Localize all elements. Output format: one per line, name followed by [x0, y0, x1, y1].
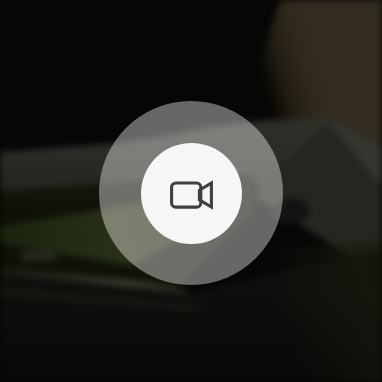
button[interactable]: Start video call	[99, 101, 283, 285]
